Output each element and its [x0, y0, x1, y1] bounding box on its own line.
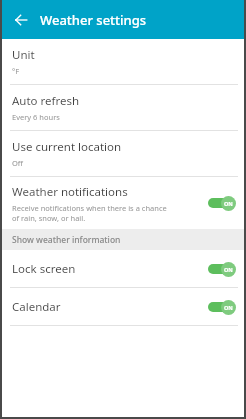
staticText: Off	[12, 158, 24, 168]
staticText: Auto refresh	[12, 93, 80, 109]
staticText: Weather notifications	[12, 184, 128, 200]
button[interactable]: Back	[8, 7, 34, 33]
staticText: °F	[12, 66, 20, 76]
button[interactable]: Toggle on	[207, 299, 237, 315]
button[interactable]: Toggle on	[207, 261, 237, 277]
staticText: Show weather information	[12, 234, 121, 246]
staticText: ON	[224, 200, 233, 207]
button[interactable]: Unit	[2, 39, 244, 84]
staticText: ON	[224, 266, 233, 273]
staticText: Unit	[12, 47, 35, 63]
button[interactable]: Use current location	[2, 131, 244, 176]
button[interactable]: Weather notifications	[2, 177, 244, 229]
staticText: Every 6 hours	[12, 112, 60, 122]
button[interactable]: Lock screen	[2, 250, 244, 287]
staticText: ON	[224, 304, 233, 311]
button[interactable]: Auto refresh	[2, 85, 244, 130]
button[interactable]: Toggle on	[207, 195, 237, 211]
staticText: Calendar	[12, 299, 207, 315]
staticText: Weather settings	[40, 11, 147, 29]
button[interactable]: Calendar	[2, 288, 244, 325]
staticText: Receive notifications when there is a ch…	[12, 203, 167, 223]
staticText: Lock screen	[12, 261, 207, 277]
staticText: Use current location	[12, 139, 122, 155]
